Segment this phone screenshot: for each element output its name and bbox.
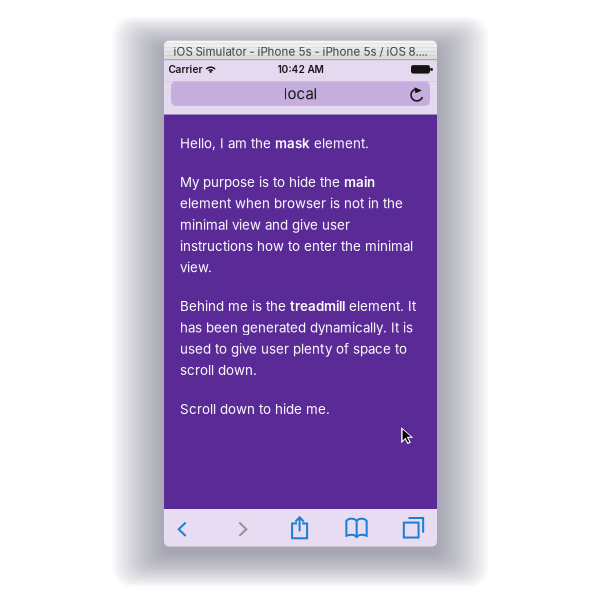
- staticText: iOS Simulator - iPhone 5s - iPhone 5s / …: [173, 45, 427, 59]
- button[interactable]: Back: [160, 509, 204, 546]
- staticText: local: [283, 85, 317, 103]
- staticText: Behind me is the treadmill element. It h…: [180, 298, 416, 378]
- staticText: Scroll down to hide me.: [180, 401, 330, 417]
- staticText: 10:42 AM: [277, 63, 323, 75]
- staticText: My purpose is to hide the main element w…: [180, 174, 413, 275]
- button[interactable]: Bookmarks: [334, 509, 378, 546]
- staticText: Hello, I am the mask element.: [180, 136, 369, 151]
- button[interactable]: Share: [278, 509, 322, 546]
- button[interactable]: local: [171, 81, 430, 106]
- staticText: Carrier: [168, 63, 202, 75]
- button[interactable]: Tabs: [391, 509, 435, 546]
- button[interactable]: Forward: [221, 509, 265, 546]
